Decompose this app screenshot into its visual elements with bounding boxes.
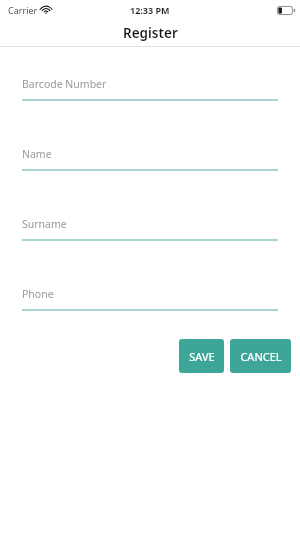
staticText: Carrier [8,4,38,16]
staticText: Name [22,147,52,161]
staticText: 12:33 PM [130,4,170,16]
other: Battery level [277,6,295,15]
staticText: Barcode Number [22,77,107,91]
button[interactable]: Phone [22,287,278,311]
button[interactable]: CANCEL [230,339,291,373]
staticText: SAVE [189,349,215,364]
staticText: CANCEL [240,349,282,364]
staticText: Surname [22,217,67,231]
other: Wi-Fi signal [41,6,51,14]
staticText: Register [123,24,178,42]
button[interactable]: Barcode Number [22,77,278,101]
button[interactable]: Surname [22,217,278,241]
button[interactable]: Name [22,147,278,171]
button[interactable]: SAVE [179,339,224,373]
staticText: Phone [22,287,54,301]
